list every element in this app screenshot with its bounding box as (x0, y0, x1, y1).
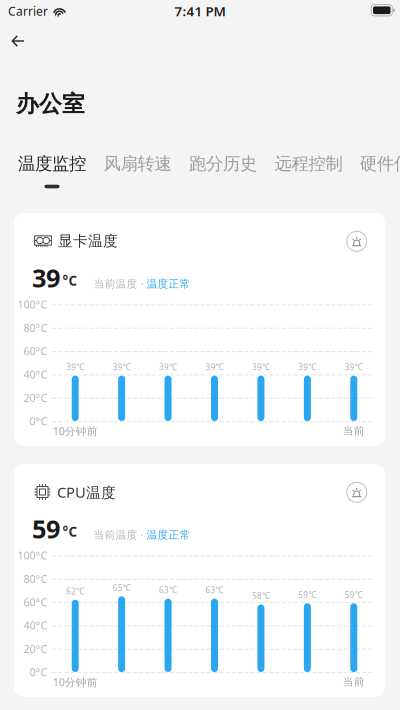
staticText: 当前温度 · (93, 276, 146, 290)
staticText: 100°C (17, 297, 47, 311)
staticText: 100°C (17, 548, 47, 562)
staticText: 40°C (23, 618, 47, 632)
staticText: 59°C (298, 589, 316, 600)
staticText: 当前 (343, 424, 365, 437)
button[interactable]: 远程控制 (274, 153, 342, 195)
staticText: 60°C (23, 344, 47, 358)
staticText: 39°C (298, 362, 316, 372)
button[interactable]: 报警设置 (343, 227, 371, 255)
staticText: 39 (32, 261, 60, 294)
staticText: 温度正常 (146, 277, 190, 290)
staticText: 当前 (343, 675, 365, 688)
staticText: 10分钟前 (53, 675, 98, 689)
staticText: CPU温度 (57, 482, 116, 502)
staticText: 80°C (23, 321, 47, 335)
staticText: 20°C (23, 642, 47, 656)
button[interactable]: 硬件信息 (360, 153, 400, 195)
button[interactable]: 风扇转速 (103, 153, 171, 195)
staticText: 39°C (159, 362, 177, 372)
button[interactable]: 报警设置 (343, 478, 371, 506)
staticText: 7:41 PM (174, 2, 225, 20)
staticText: 温度正常 (146, 528, 190, 541)
staticText: 59 (32, 512, 60, 545)
staticText: °C (62, 523, 77, 540)
staticText: 40°C (23, 367, 47, 381)
staticText: 39°C (66, 362, 84, 372)
staticText: °C (62, 272, 77, 289)
staticText: 0°C (29, 665, 47, 679)
staticText: 65°C (113, 582, 131, 593)
button[interactable]: 跑分历史 (189, 153, 257, 195)
staticText: 63°C (205, 585, 223, 595)
staticText: 39°C (205, 362, 223, 372)
staticText: 63°C (159, 585, 177, 595)
staticText: 39°C (345, 362, 363, 372)
staticText: 62°C (66, 586, 84, 597)
button[interactable]: 温度监控 (18, 153, 86, 195)
staticText: 温度监控 (18, 153, 86, 174)
staticText: 跑分历史 (189, 153, 257, 174)
staticText: 0°C (29, 414, 47, 428)
staticText: 远程控制 (274, 153, 342, 174)
button[interactable]: 返回 (0, 24, 38, 58)
staticText: 59°C (345, 589, 363, 600)
staticText: 39°C (252, 362, 270, 372)
staticText: 80°C (23, 572, 47, 586)
staticText: 39°C (113, 362, 131, 372)
staticText: 当前温度 · (93, 527, 146, 541)
staticText: 10分钟前 (53, 424, 98, 438)
staticText: 显卡温度 (58, 232, 118, 250)
staticText: 办公室 (16, 90, 85, 118)
staticText: Carrier (8, 3, 48, 19)
staticText: 20°C (23, 391, 47, 405)
staticText: 60°C (23, 595, 47, 609)
staticText: 风扇转速 (103, 153, 171, 174)
staticText: 硬件信息 (360, 153, 400, 174)
staticText: 58°C (252, 591, 270, 601)
